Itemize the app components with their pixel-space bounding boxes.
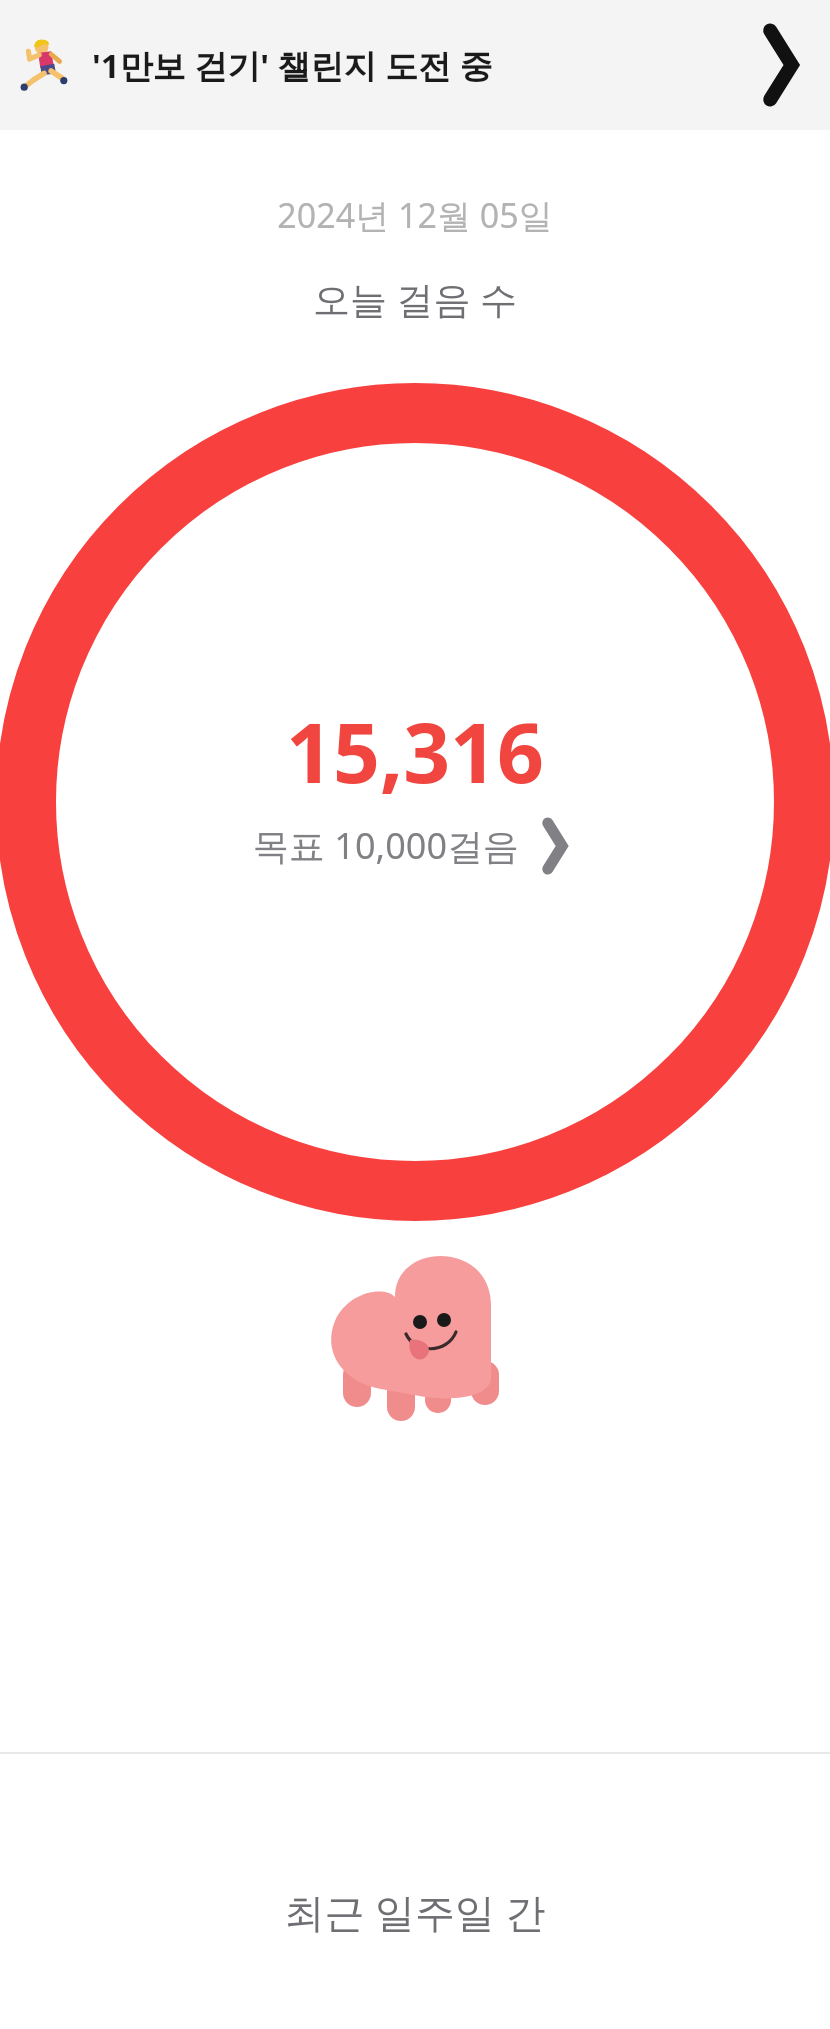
- staticText: 2024년 12월 05일: [0, 192, 830, 238]
- staticText: 목표 10,000걸음: [253, 821, 519, 870]
- button[interactable]: 목표 10,000걸음: [247, 817, 583, 874]
- button[interactable]: '1만보 걷기' 챌린지 도전 중: [0, 0, 830, 130]
- staticText: 오늘 걸음 수: [0, 273, 830, 324]
- staticText: 15,316: [286, 695, 544, 807]
- other: 챌린지 보기: [746, 30, 816, 100]
- staticText: '1만보 걷기' 챌린지 도전 중: [92, 43, 746, 88]
- staticText: 최근 일주일 간: [0, 1884, 830, 1939]
